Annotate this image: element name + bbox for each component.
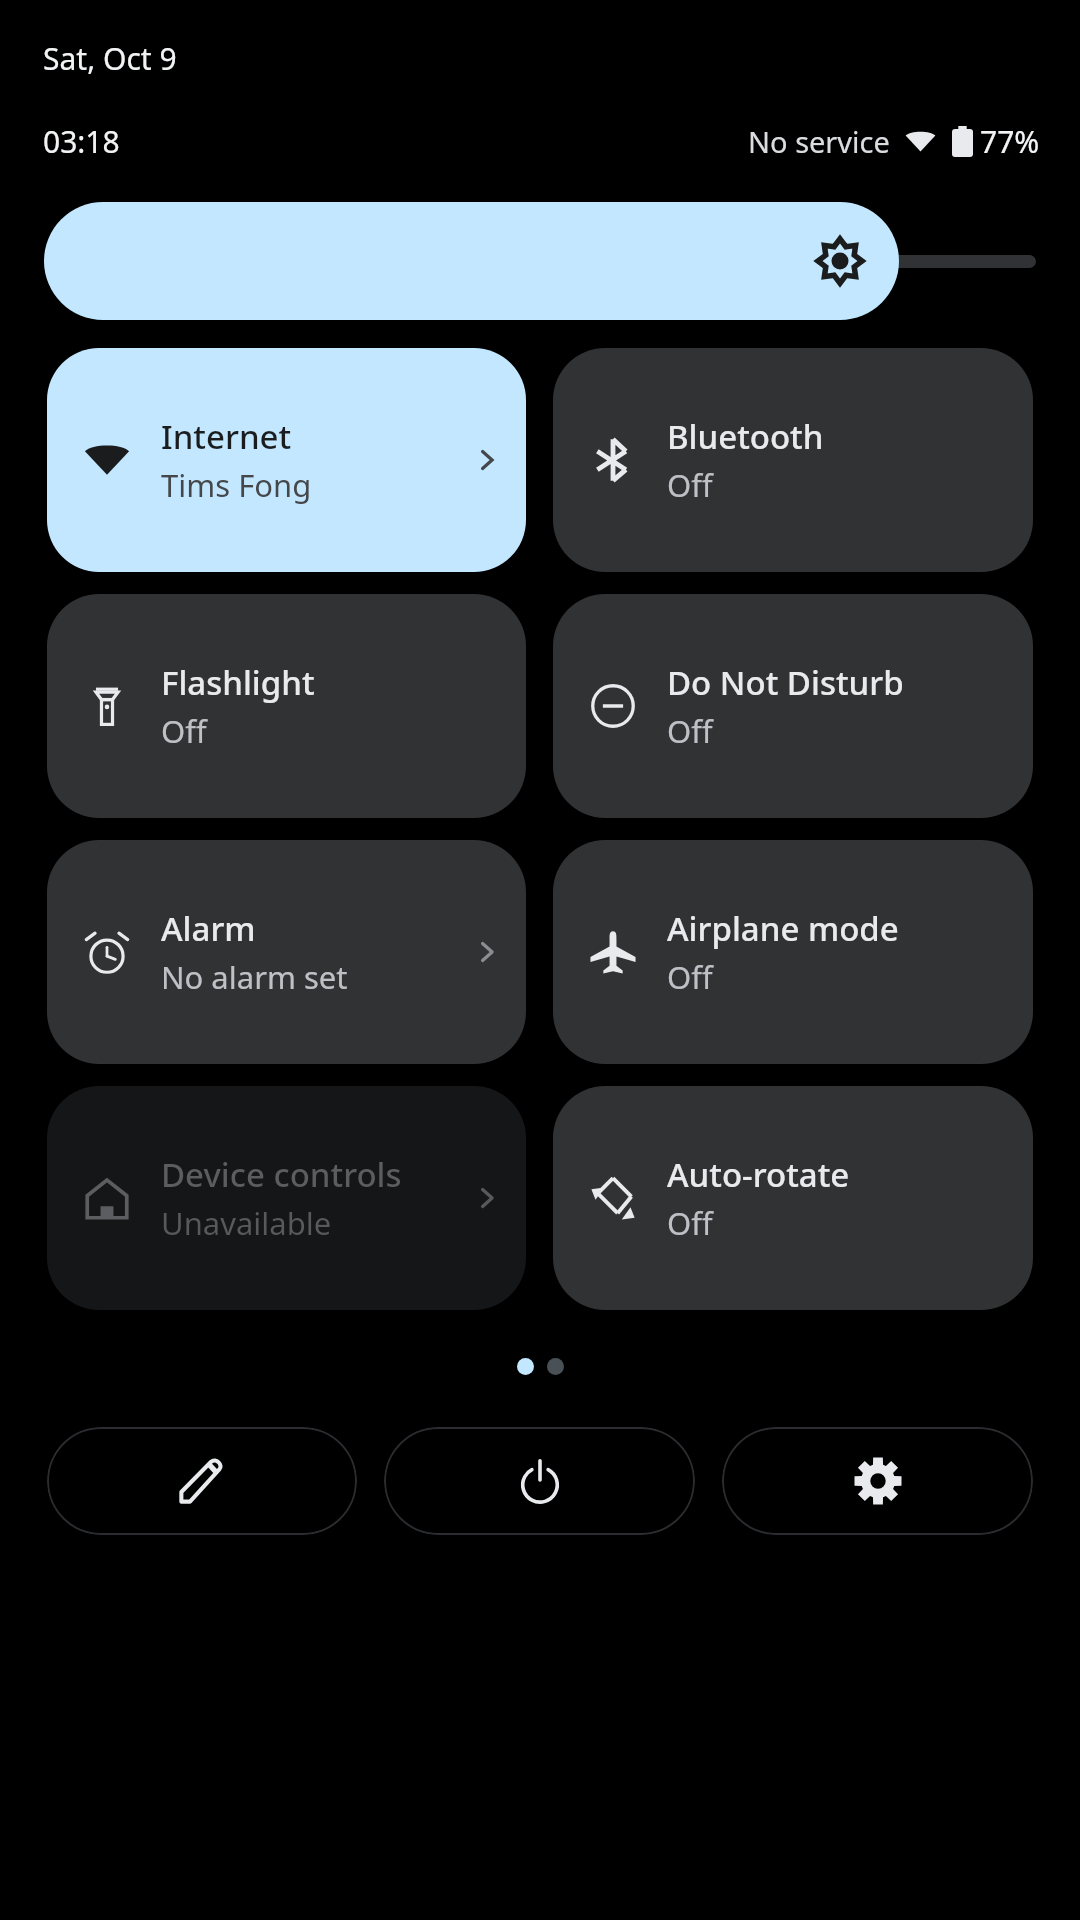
button[interactable]: Bluetooth: [553, 348, 1033, 572]
staticText: Tims Fong: [161, 464, 312, 506]
button[interactable]: Flashlight: [47, 594, 526, 818]
button[interactable]: Auto-rotate: [553, 1086, 1033, 1310]
staticText: Internet: [161, 414, 292, 459]
staticText: Flashlight: [161, 660, 315, 705]
staticText: 03:18: [43, 121, 120, 162]
staticText: Auto-rotate: [667, 1152, 850, 1197]
staticText: Off: [667, 464, 713, 506]
staticText: Off: [667, 1202, 713, 1244]
button[interactable]: Alarm: [47, 840, 526, 1064]
button[interactable]: Device controls: [47, 1086, 526, 1310]
button[interactable]: Edit: [47, 1427, 357, 1535]
staticText: Unavailable: [161, 1202, 332, 1244]
staticText: Do Not Disturb: [667, 660, 904, 705]
button[interactable]: Settings: [722, 1427, 1033, 1535]
button[interactable]: Brightness: [44, 202, 899, 320]
staticText: Bluetooth: [667, 414, 824, 459]
staticText: Off: [161, 710, 207, 752]
staticText: Airplane mode: [667, 906, 899, 951]
staticText: Device controls: [161, 1152, 402, 1197]
staticText: Sat, Oct 9: [43, 38, 177, 79]
staticText: Off: [667, 710, 713, 752]
staticText: No alarm set: [161, 956, 348, 998]
staticText: Off: [667, 956, 713, 998]
button[interactable]: Do Not Disturb: [553, 594, 1033, 818]
staticText: Alarm: [161, 906, 256, 951]
staticText: 77%: [980, 121, 1040, 162]
staticText: No service: [748, 122, 890, 161]
button[interactable]: Power: [384, 1427, 695, 1535]
button[interactable]: Airplane mode: [553, 840, 1033, 1064]
button[interactable]: Internet: [47, 348, 526, 572]
